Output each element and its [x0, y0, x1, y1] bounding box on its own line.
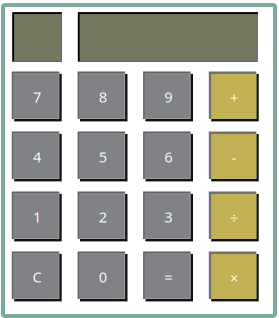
staticText: -	[231, 148, 236, 168]
button[interactable]: Zero	[78, 251, 128, 301]
button[interactable]: Four	[12, 131, 62, 181]
button[interactable]: Nine	[143, 71, 193, 121]
button[interactable]: Divide	[209, 191, 259, 241]
button[interactable]: Minus	[209, 131, 259, 181]
staticText: 0	[99, 267, 107, 287]
button[interactable]: Five	[78, 131, 128, 181]
staticText: 5	[99, 147, 107, 167]
button[interactable]: Equals	[143, 251, 193, 301]
staticText: =	[164, 267, 172, 287]
button[interactable]: Seven	[12, 71, 62, 121]
staticText: ÷	[230, 208, 238, 228]
staticText: C	[32, 267, 41, 287]
staticText: 2	[99, 207, 107, 227]
staticText: ×	[230, 268, 238, 288]
button[interactable]: Clear	[12, 251, 62, 301]
staticText: 1	[33, 207, 41, 227]
button[interactable]: Eight	[78, 71, 128, 121]
button[interactable]: One	[12, 191, 62, 241]
staticText: +	[230, 88, 238, 108]
staticText: 6	[164, 147, 172, 167]
staticText: 3	[164, 207, 172, 227]
button[interactable]: Multiply	[209, 251, 259, 301]
button[interactable]: Six	[143, 131, 193, 181]
button[interactable]: Two	[78, 191, 128, 241]
button[interactable]: Plus	[209, 71, 259, 121]
staticText: 4	[33, 147, 41, 167]
staticText: 9	[164, 87, 172, 107]
button[interactable]: Three	[143, 191, 193, 241]
staticText: 8	[99, 87, 107, 107]
staticText: 7	[33, 87, 41, 107]
